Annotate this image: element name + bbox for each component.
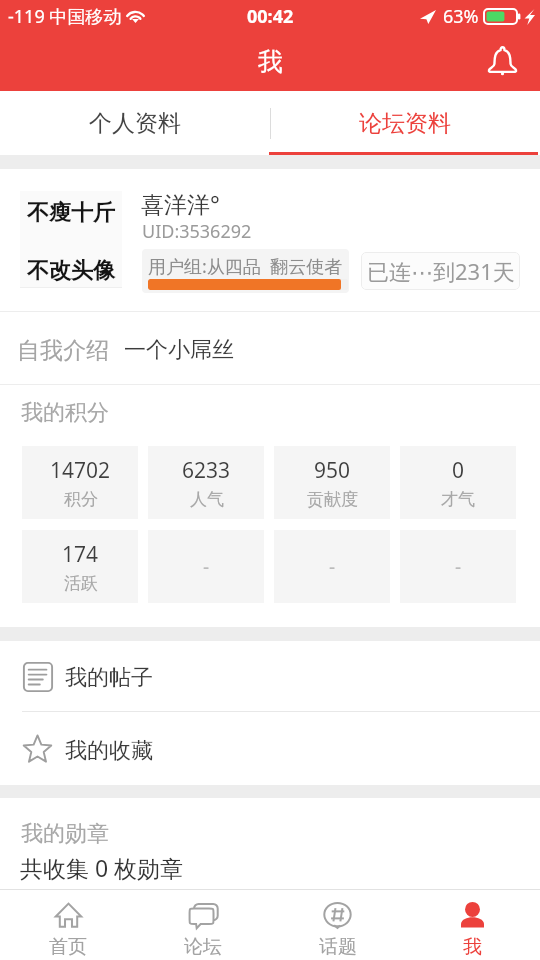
staticText: 喜洋洋° (141, 188, 220, 219)
staticText: 00:42 (247, 4, 294, 29)
staticText: UID:3536292 (142, 219, 252, 244)
staticText: 我的勋章 (21, 820, 109, 848)
staticText: 不瘦十斤 (27, 199, 115, 227)
staticText: 0 (452, 456, 465, 485)
button[interactable]: 0 (400, 446, 516, 519)
button[interactable]: Notifications (479, 39, 525, 85)
staticText: 我的收藏 (65, 737, 153, 765)
button[interactable]: 我 (405, 890, 540, 960)
staticText: 贡献度 (307, 489, 358, 510)
staticText: -119 中国移动 (8, 4, 122, 29)
staticText: 我 (463, 935, 482, 959)
button[interactable]: 已连⋯到231天 (361, 252, 520, 290)
button[interactable]: 6233 (148, 446, 264, 519)
staticText: 63% (443, 4, 479, 29)
staticText: - (329, 554, 336, 580)
staticText: 论坛 (184, 935, 222, 959)
button[interactable]: 不瘦十斤 (20, 191, 122, 288)
staticText: 活跃 (64, 573, 98, 594)
button[interactable]: 论坛 (135, 890, 270, 960)
staticText: 共收集 0 枚勋章 (20, 852, 184, 883)
button[interactable]: 自我介绍 (0, 312, 540, 384)
staticText: 才气 (441, 489, 475, 510)
staticText: 950 (314, 456, 351, 485)
button[interactable]: 话题 (270, 890, 405, 960)
staticText: 174 (62, 540, 99, 569)
staticText: 论坛资料 (359, 109, 451, 138)
staticText: 人气 (190, 489, 224, 510)
staticText: 自我介绍 (17, 336, 109, 365)
button[interactable]: 950 (274, 446, 390, 519)
button[interactable]: 我的勋章 (0, 798, 540, 883)
staticText: 我的帖子 (65, 664, 153, 692)
staticText: 首页 (49, 935, 87, 959)
button[interactable]: 用户组:从四品 翻云使者 (142, 249, 349, 293)
staticText: 用户组:从四品 翻云使者 (148, 254, 343, 279)
staticText: 个人资料 (89, 109, 181, 138)
staticText: 我的积分 (21, 399, 109, 427)
staticText: - (455, 554, 462, 580)
button[interactable]: 14702 (22, 446, 138, 519)
button[interactable]: 论坛资料 (270, 91, 540, 155)
staticText: 我 (258, 46, 283, 77)
button[interactable]: 我的收藏 (0, 712, 540, 785)
staticText: - (203, 554, 210, 580)
staticText: 6233 (182, 456, 231, 485)
button[interactable]: 174 (22, 530, 138, 603)
button[interactable]: 我的帖子 (0, 641, 540, 711)
button[interactable]: 首页 (0, 890, 135, 960)
button[interactable]: 个人资料 (0, 91, 270, 155)
staticText: 一个小屌丝 (124, 336, 234, 364)
staticText: 已连⋯到231天 (367, 256, 515, 286)
staticText: 积分 (64, 489, 98, 510)
staticText: 14702 (50, 456, 111, 485)
staticText: 话题 (319, 935, 357, 959)
staticText: 不改头像 (27, 257, 115, 285)
